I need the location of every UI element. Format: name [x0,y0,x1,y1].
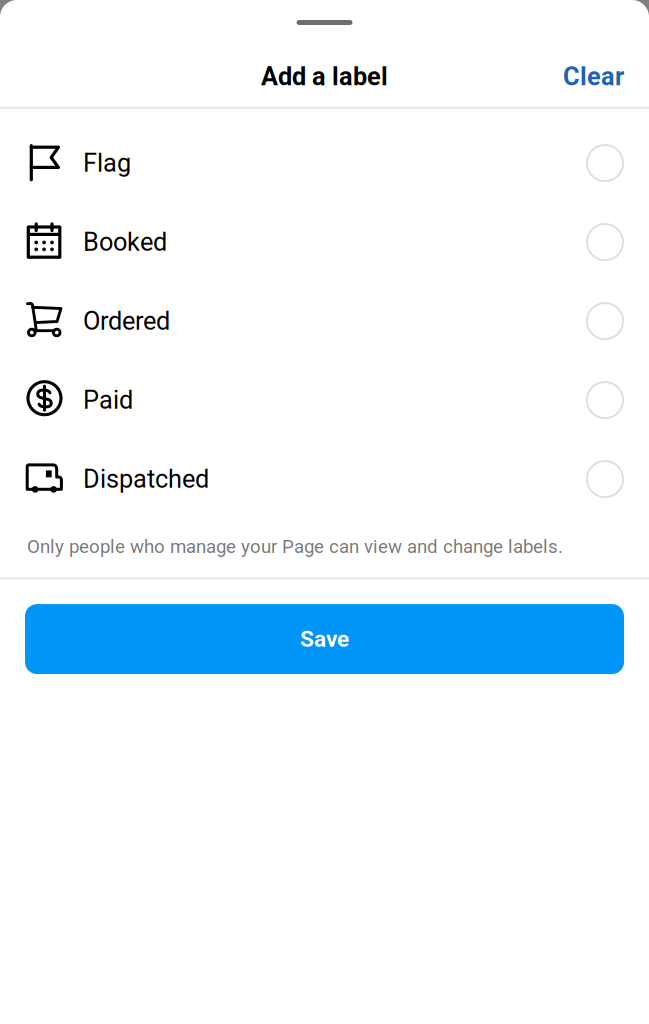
button[interactable]: Save [25,604,624,674]
staticText: Booked [83,227,167,257]
button[interactable]: Dispatched [0,440,649,519]
staticText: Paid [83,385,133,415]
staticText: Only people who manage your Page can vie… [27,536,563,557]
staticText: Flag [83,148,131,178]
button[interactable]: Booked [0,203,649,282]
staticText: Ordered [83,306,170,336]
staticText: Add a label [261,62,388,91]
button[interactable]: Flag [0,124,649,203]
staticText: Dispatched [83,464,209,494]
button[interactable]: Clear [538,50,649,103]
button[interactable]: Paid [0,361,649,440]
button[interactable]: Ordered [0,282,649,361]
staticText: Clear [563,62,624,91]
staticText: Save [300,626,349,652]
